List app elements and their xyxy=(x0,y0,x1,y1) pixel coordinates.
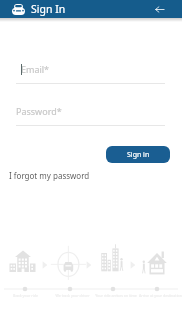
staticText: Sign in xyxy=(127,150,150,160)
staticText: Your ride arrives on time xyxy=(95,293,137,298)
staticText: We track your driver xyxy=(55,293,90,298)
staticText: I forgot my password xyxy=(9,170,90,181)
staticText: Email* xyxy=(21,63,50,75)
button[interactable]: Password* xyxy=(16,104,165,125)
staticText: Sign In xyxy=(31,2,66,16)
button[interactable]: Sign in xyxy=(106,146,170,163)
staticText: Arrive at your destination xyxy=(139,293,182,298)
button[interactable]: I forgot my password xyxy=(9,169,90,182)
button[interactable]: Back xyxy=(151,0,169,18)
staticText: Password* xyxy=(16,105,62,117)
button[interactable]: Email* xyxy=(16,62,165,83)
staticText: Book your ride xyxy=(13,293,38,298)
